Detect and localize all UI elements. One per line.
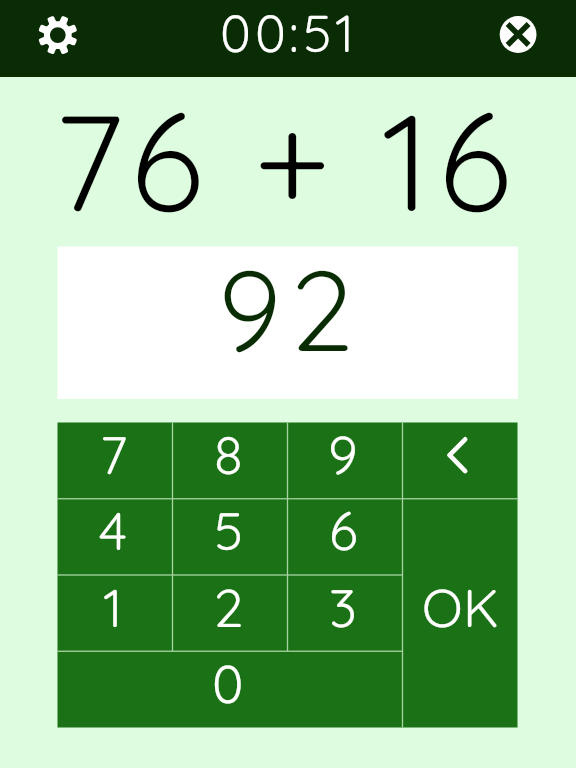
button[interactable]: 8: [172, 422, 287, 498]
button[interactable]: 0: [57, 651, 402, 727]
button[interactable]: 5: [172, 498, 287, 574]
button[interactable]: 4: [57, 498, 172, 574]
button[interactable]: 6: [287, 498, 402, 574]
button[interactable]: 1: [57, 575, 172, 651]
button[interactable]: 2: [172, 575, 287, 651]
button[interactable]: 3: [287, 575, 402, 651]
button[interactable]: 9: [287, 422, 402, 498]
button[interactable]: Close: [482, 8, 560, 69]
button[interactable]: OK: [402, 498, 517, 726]
button[interactable]: Settings: [16, 8, 94, 69]
button[interactable]: 92: [57, 246, 517, 398]
button[interactable]: 7: [57, 422, 172, 498]
button[interactable]: Backspace: [402, 422, 517, 498]
